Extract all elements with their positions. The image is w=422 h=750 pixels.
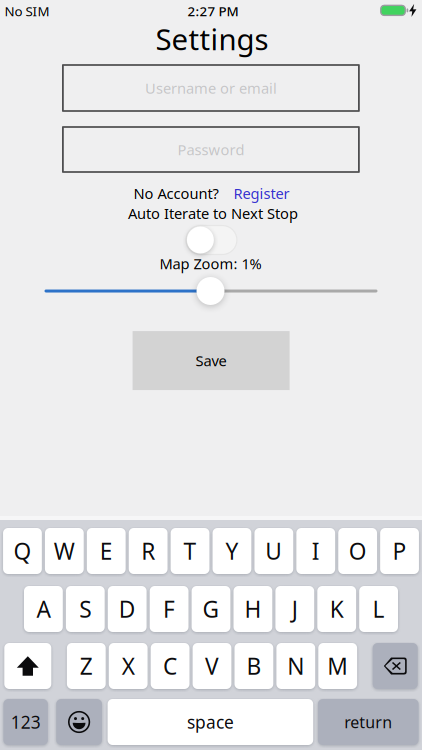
staticText: G [202, 594, 219, 624]
button[interactable]: L [359, 586, 398, 632]
button[interactable]: R [129, 528, 167, 574]
button[interactable]: I [296, 528, 335, 574]
staticText: K [330, 594, 344, 624]
button[interactable]: space [108, 699, 313, 745]
button[interactable]: G [192, 586, 230, 632]
staticText: Z [80, 651, 93, 681]
staticText: L [373, 594, 385, 624]
staticText: No Account? [133, 184, 218, 203]
button[interactable]: T [171, 528, 209, 574]
staticText: C [163, 651, 177, 681]
button[interactable]: K [317, 586, 356, 632]
button[interactable]: O [338, 528, 377, 574]
staticText: I [312, 536, 320, 566]
staticText: J [292, 594, 298, 624]
staticText: Password [177, 140, 244, 159]
staticText: X [122, 651, 135, 681]
button[interactable]: C [151, 643, 189, 689]
staticText: F [163, 594, 175, 624]
staticText: T [183, 536, 196, 566]
button[interactable]: B [234, 643, 273, 689]
staticText: B [246, 651, 261, 681]
staticText: A [36, 594, 50, 624]
staticText: Q [13, 536, 31, 566]
button[interactable]: J [275, 586, 314, 632]
staticText: E [100, 536, 113, 566]
button[interactable]: return [318, 699, 419, 745]
button[interactable]: N [276, 643, 315, 689]
button[interactable]: Y [212, 528, 251, 574]
staticText: space [187, 710, 234, 733]
button[interactable]: Auto Iterate to Next Stop [186, 225, 237, 254]
button[interactable]: V [193, 643, 231, 689]
button[interactable]: Register [233, 184, 289, 203]
staticText: Username or email [145, 78, 277, 98]
button[interactable]: U [254, 528, 293, 574]
staticText: H [244, 594, 261, 624]
staticText: N [287, 651, 304, 681]
staticText: No SIM [4, 2, 49, 20]
staticText: 2:27 PM [187, 2, 238, 20]
staticText: P [392, 536, 406, 566]
staticText: return [344, 711, 392, 733]
button[interactable]: M [318, 643, 357, 689]
button[interactable]: 123 [3, 699, 48, 745]
button[interactable]: P [380, 528, 419, 574]
staticText: Save [196, 351, 227, 370]
staticText: Auto Iterate to Next Stop [128, 203, 298, 223]
staticText: 123 [11, 710, 41, 733]
staticText: Map Zoom: 1% [160, 254, 262, 273]
button[interactable]: Username or email [63, 65, 359, 111]
staticText: R [141, 536, 155, 566]
button[interactable]: Save [133, 331, 290, 390]
button[interactable]: D [108, 586, 147, 632]
button[interactable]: Emoji [56, 699, 102, 745]
button[interactable]: S [66, 586, 105, 632]
button[interactable]: F [150, 586, 188, 632]
button[interactable]: A [24, 586, 63, 632]
button[interactable]: Shift [4, 643, 51, 689]
button[interactable]: Delete [373, 643, 418, 689]
staticText: Y [225, 536, 238, 566]
button[interactable]: W [45, 528, 84, 574]
button[interactable]: X [109, 643, 148, 689]
staticText: M [327, 651, 348, 681]
button[interactable]: Z [67, 643, 106, 689]
staticText: O [349, 536, 367, 566]
staticText: S [79, 594, 91, 624]
staticText: U [265, 536, 282, 566]
staticText: Settings [155, 19, 268, 58]
button[interactable]: Password [63, 127, 359, 172]
staticText: Register [233, 184, 289, 203]
button[interactable]: H [233, 586, 272, 632]
button[interactable]: E [87, 528, 126, 574]
staticText: D [119, 594, 136, 624]
button[interactable]: Q [3, 528, 42, 574]
staticText: V [205, 651, 219, 681]
staticText: W [54, 536, 75, 566]
